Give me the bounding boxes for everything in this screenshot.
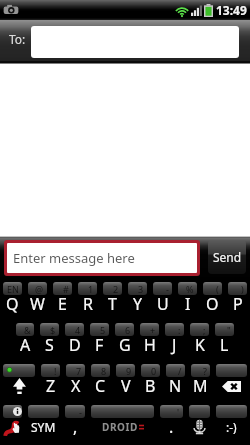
- button[interactable]: -: [65, 405, 85, 442]
- button[interactable]: Voice input: [189, 405, 210, 442]
- staticText: ): [241, 283, 244, 295]
- staticText: %: [186, 283, 194, 295]
- button[interactable]: %: [178, 282, 197, 320]
- staticText: H: [144, 334, 156, 356]
- staticText: O: [206, 293, 219, 315]
- staticText: 7: [76, 365, 82, 377]
- button[interactable]: @: [28, 282, 47, 320]
- button[interactable]: Recipient: [31, 26, 239, 58]
- staticText: S: [45, 334, 54, 356]
- button[interactable]: !: [41, 364, 60, 402]
- button[interactable]: Backspace: [216, 364, 247, 402]
- staticText: !: [54, 365, 57, 377]
- button[interactable]: ?: [191, 364, 210, 402]
- button[interactable]: 0: [141, 364, 160, 402]
- staticText: 2: [113, 283, 119, 295]
- staticText: +: [150, 324, 156, 336]
- staticText: :-): [226, 419, 237, 435]
- staticText: A: [20, 334, 31, 356]
- staticText: ': [177, 406, 180, 418]
- staticText: G: [119, 334, 131, 356]
- button[interactable]: #: [53, 282, 72, 320]
- staticText: E: [58, 293, 67, 315]
- button[interactable]: 3: [128, 282, 147, 320]
- staticText: I: [185, 293, 191, 315]
- staticText: 8: [101, 365, 107, 377]
- staticText: T: [108, 293, 117, 315]
- button[interactable]: ": [215, 323, 234, 361]
- staticText: B: [145, 375, 156, 397]
- staticText: Q: [6, 293, 19, 315]
- staticText: DROID: [102, 420, 138, 434]
- staticText: -: [79, 406, 82, 418]
- staticText: EN: [7, 283, 19, 295]
- button[interactable]: Shift: [3, 364, 35, 402]
- button[interactable]: 8: [91, 364, 110, 402]
- button[interactable]: ): [228, 282, 247, 320]
- staticText: ?: [203, 365, 207, 377]
- staticText: $: [50, 324, 56, 336]
- button[interactable]: Emoticon: [216, 405, 247, 442]
- button[interactable]: 4: [65, 323, 84, 361]
- staticText: D: [69, 334, 81, 356]
- staticText: P: [233, 293, 243, 315]
- button[interactable]: ': [160, 405, 183, 442]
- button[interactable]: Send: [208, 240, 246, 274]
- staticText: V: [121, 375, 131, 397]
- button[interactable]: Enter message here: [7, 243, 197, 273]
- staticText: N: [169, 375, 182, 397]
- button[interactable]: -: [153, 282, 172, 320]
- staticText: &: [24, 324, 31, 336]
- staticText: 3: [138, 283, 144, 295]
- button[interactable]: EN: [3, 282, 22, 320]
- staticText: 5: [100, 324, 106, 336]
- staticText: Enter message here: [13, 249, 135, 267]
- staticText: M: [193, 375, 208, 397]
- staticText: /: [178, 365, 182, 377]
- button[interactable]: 6: [115, 323, 134, 361]
- button[interactable]: Symbols: [28, 405, 59, 442]
- button[interactable]: :: [165, 323, 184, 361]
- staticText: 13:49: [216, 2, 247, 18]
- staticText: ": [227, 324, 231, 336]
- staticText: #: [63, 283, 69, 295]
- staticText: .: [169, 416, 174, 438]
- button[interactable]: 1: [78, 282, 97, 320]
- button[interactable]: +: [140, 323, 159, 361]
- staticText: W: [30, 293, 45, 315]
- staticText: Z: [46, 375, 56, 397]
- button[interactable]: 5: [90, 323, 109, 361]
- staticText: R: [83, 293, 93, 315]
- button[interactable]: Input method: [3, 405, 22, 442]
- staticText: F: [95, 334, 104, 356]
- staticText: To:: [9, 31, 26, 47]
- button[interactable]: $: [40, 323, 59, 361]
- button[interactable]: 2: [103, 282, 122, 320]
- button[interactable]: (: [203, 282, 222, 320]
- button[interactable]: Space: [91, 405, 154, 442]
- staticText: SYM: [31, 419, 56, 435]
- staticText: ;: [203, 324, 206, 336]
- staticText: Y: [133, 293, 143, 315]
- staticText: 4: [75, 324, 81, 336]
- staticText: K: [195, 334, 205, 356]
- staticText: X: [71, 375, 81, 397]
- staticText: L: [220, 334, 229, 356]
- button[interactable]: ;: [190, 323, 209, 361]
- staticText: 6: [125, 324, 131, 336]
- button[interactable]: &: [16, 323, 34, 361]
- staticText: :: [178, 324, 181, 336]
- button[interactable]: /: [166, 364, 185, 402]
- staticText: ,: [73, 416, 78, 438]
- button[interactable]: 9: [116, 364, 135, 402]
- staticText: 1: [88, 283, 94, 295]
- staticText: C: [95, 375, 106, 397]
- staticText: J: [172, 334, 177, 356]
- staticText: -: [166, 283, 169, 295]
- staticText: U: [157, 293, 169, 315]
- button[interactable]: 7: [66, 364, 85, 402]
- staticText: Send: [213, 249, 242, 265]
- staticText: 0: [151, 365, 157, 377]
- staticText: @: [35, 283, 44, 295]
- staticText: (: [216, 283, 219, 295]
